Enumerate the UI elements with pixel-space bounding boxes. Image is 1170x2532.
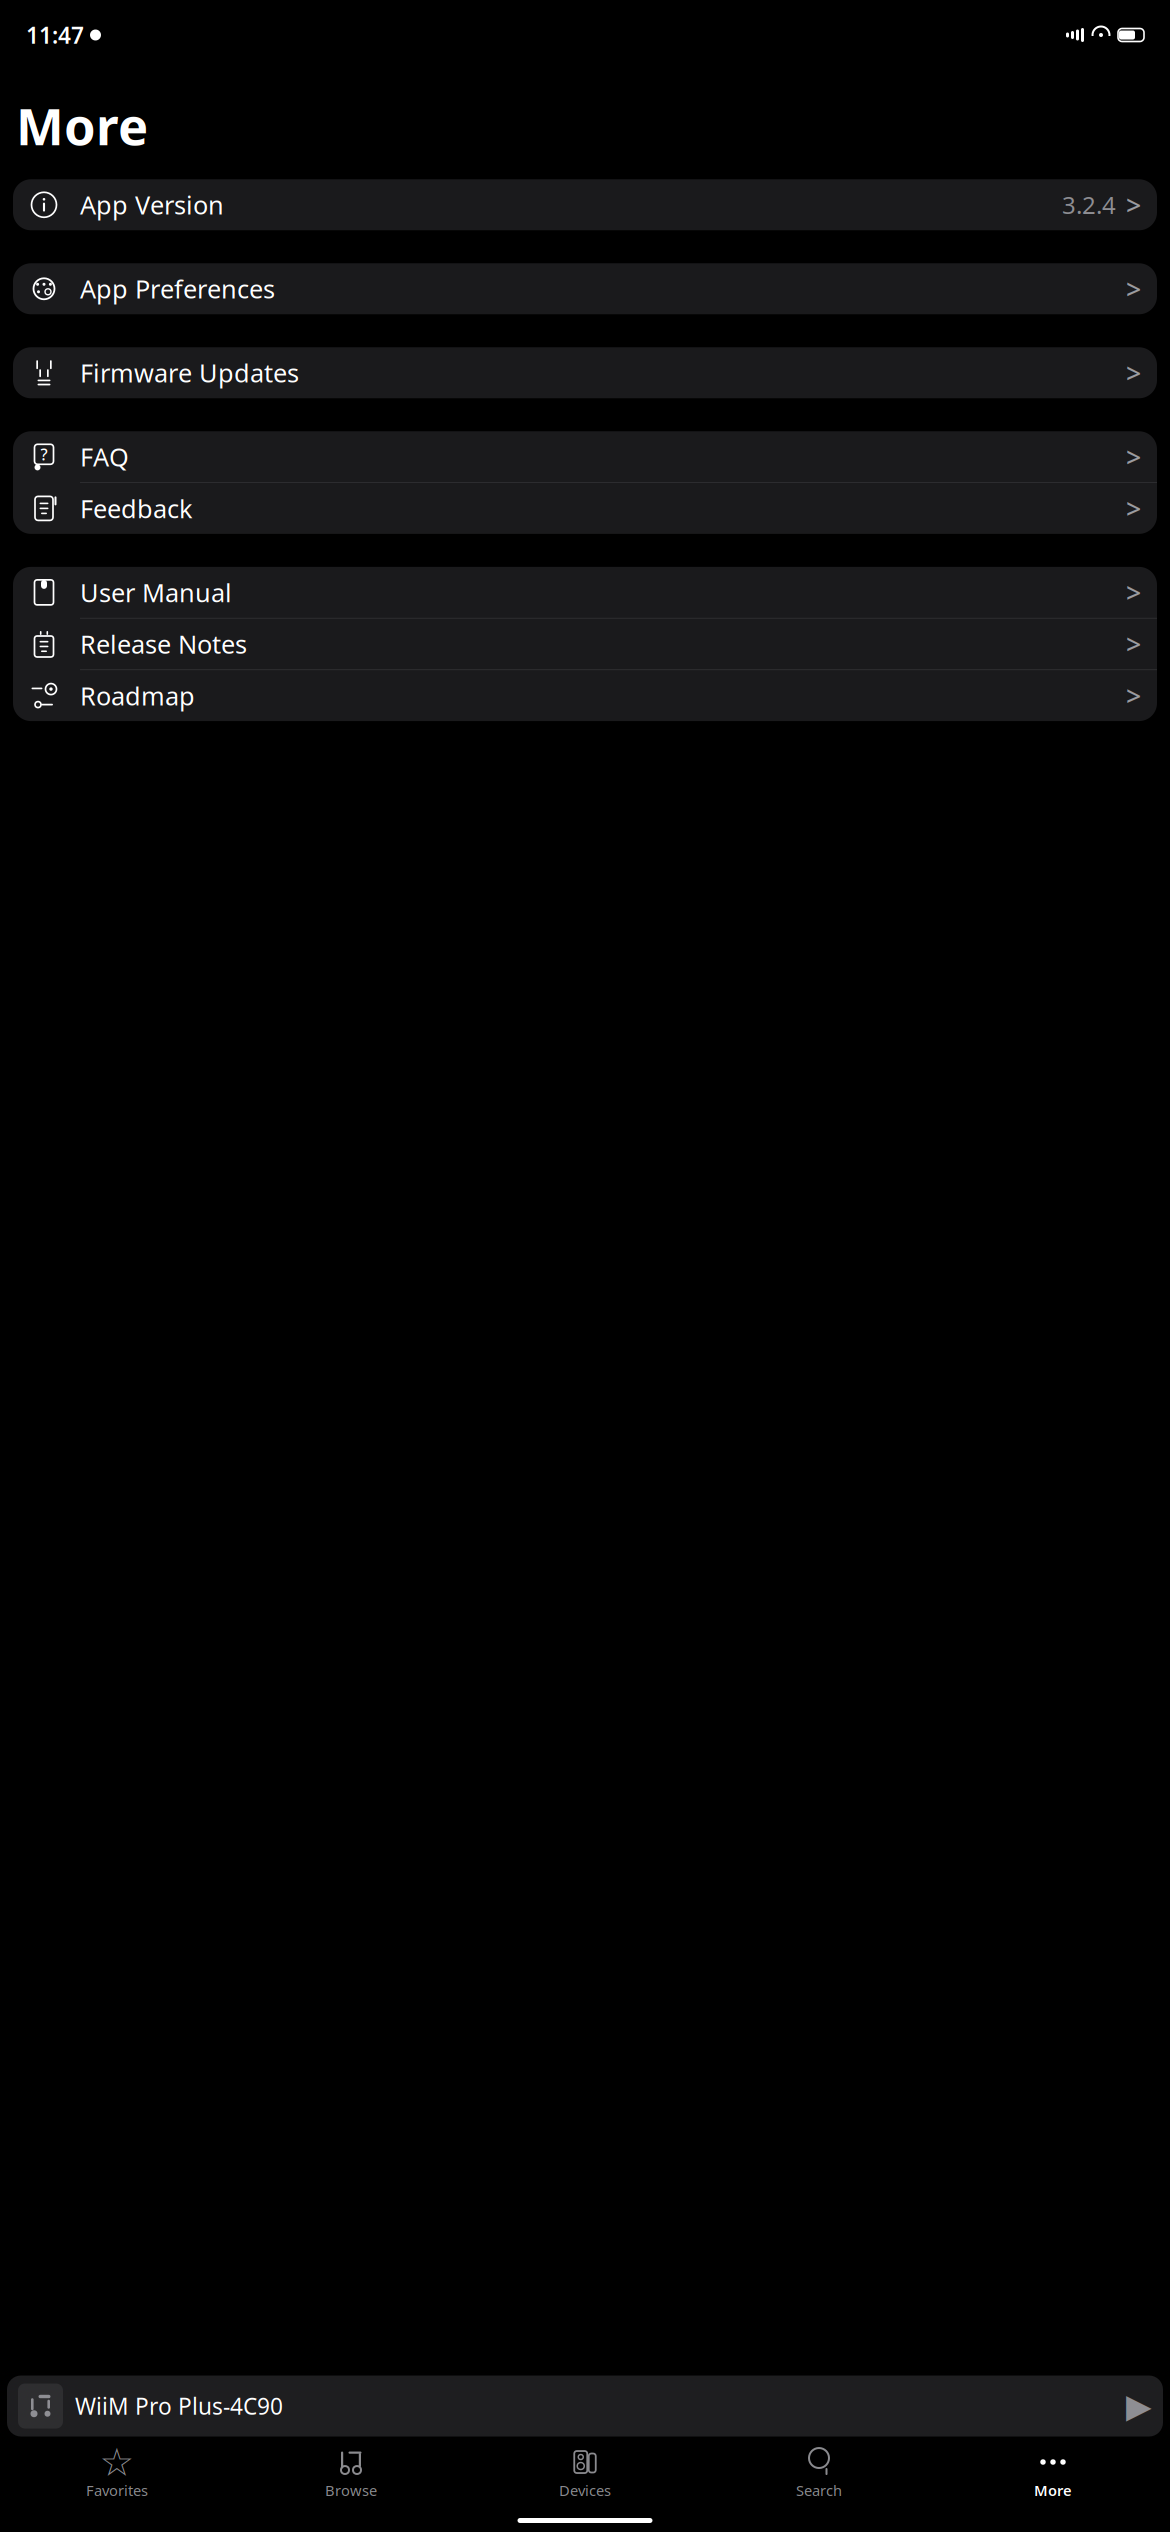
button[interactable]: More [936, 2440, 1170, 2500]
staticText: Release Notes [80, 627, 247, 661]
staticText: WiiM Pro Plus-4C90 [75, 2391, 283, 2421]
staticText: User Manual [80, 576, 232, 609]
staticText: ☆ [99, 2440, 134, 2484]
staticText: 3.2.4 [1062, 189, 1116, 221]
staticText: ▶ [1126, 2387, 1152, 2425]
button[interactable]: ☆ [0, 2440, 234, 2500]
staticText: Favorites [86, 2480, 148, 2500]
staticText: App Preferences [80, 272, 275, 306]
staticText: > [1126, 355, 1141, 390]
staticText: Browse [325, 2480, 377, 2500]
button[interactable]: Release Notes [13, 618, 1157, 669]
staticText: Devices [559, 2480, 611, 2500]
button[interactable]: User Manual [13, 567, 1157, 618]
button[interactable]: Search [702, 2440, 936, 2500]
button[interactable]: Devices [468, 2440, 702, 2500]
staticText: 11:47 [26, 20, 84, 50]
staticText: > [1126, 626, 1141, 662]
staticText: App Version [80, 188, 224, 222]
staticText: Feedback [80, 492, 193, 525]
button[interactable]: WiiM Pro Plus-4C90 [7, 2375, 1163, 2436]
staticText: > [1126, 575, 1141, 610]
button[interactable]: ? [13, 431, 1157, 482]
staticText: > [1126, 491, 1141, 526]
button[interactable]: App Preferences [13, 263, 1157, 314]
staticText: > [1126, 187, 1141, 222]
staticText: > [1126, 271, 1141, 306]
button[interactable]: App Version [13, 179, 1157, 230]
staticText: FAQ [80, 440, 129, 474]
staticText: Firmware Updates [80, 356, 299, 390]
button[interactable]: Firmware Updates [13, 347, 1157, 398]
button[interactable]: Roadmap [13, 670, 1157, 721]
staticText: Roadmap [80, 679, 195, 712]
button[interactable]: Feedback [13, 483, 1157, 534]
staticText: Search [796, 2480, 842, 2500]
staticText: More [1034, 2480, 1072, 2500]
staticText: ? [40, 444, 47, 465]
button[interactable]: Browse [234, 2440, 468, 2500]
staticText: More [16, 92, 148, 159]
staticText: > [1126, 678, 1141, 713]
staticText: > [1126, 439, 1141, 474]
